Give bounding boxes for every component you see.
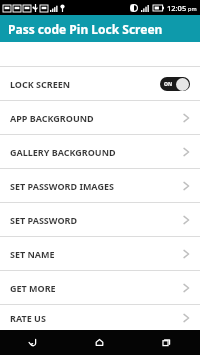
button[interactable]: GET MORE [0, 271, 200, 304]
staticText: GALLERY BACKGROUND [10, 146, 116, 158]
staticText: SET PASSWORD IMAGES [10, 180, 114, 192]
button[interactable]: APP BACKGROUND [0, 101, 200, 134]
staticText: Pass code Pin Lock Screen [8, 21, 163, 37]
staticText: APP BACKGROUND [10, 112, 94, 124]
button[interactable]: SET NAME [0, 237, 200, 270]
staticText: SET PASSWORD [10, 214, 78, 226]
button[interactable]: RATE US [0, 305, 200, 330]
button[interactable]: Back [0, 330, 66, 355]
staticText: GET MORE [10, 282, 56, 294]
staticText: pm [188, 5, 197, 12]
button[interactable]: LOCK SCREEN [0, 67, 200, 100]
staticText: RATE US [10, 312, 46, 324]
button[interactable]: Home [66, 330, 133, 355]
button[interactable]: Recent apps [133, 330, 200, 355]
staticText: ON [164, 81, 173, 88]
button[interactable]: Lock screen toggle, on [160, 77, 190, 91]
button[interactable]: GALLERY BACKGROUND [0, 135, 200, 168]
staticText: SET NAME [10, 248, 55, 260]
button[interactable]: SET PASSWORD IMAGES [0, 169, 200, 202]
button[interactable]: SET PASSWORD [0, 203, 200, 236]
staticText: 12:05 [167, 3, 187, 13]
staticText: LOCK SCREEN [10, 78, 71, 90]
